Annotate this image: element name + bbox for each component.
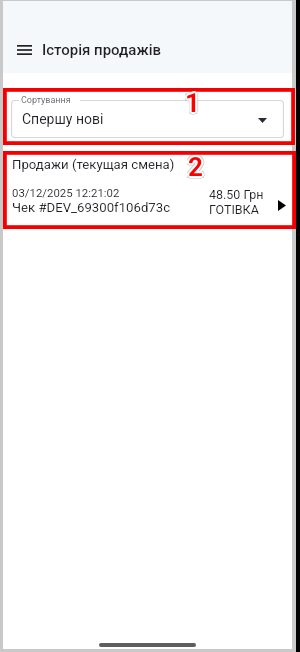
staticText: 2 xyxy=(190,152,205,182)
staticText: 2 xyxy=(186,153,201,183)
staticText: 1 xyxy=(184,90,199,120)
staticText: 1 xyxy=(184,87,199,117)
staticText: Спершу нові xyxy=(22,111,104,127)
staticText: 1 xyxy=(185,87,200,117)
staticText: 2 xyxy=(189,152,204,182)
staticText: ГОТІВКА xyxy=(209,202,259,217)
staticText: Сортування xyxy=(21,95,71,106)
staticText: 2 xyxy=(191,152,206,182)
staticText: 2 xyxy=(187,150,202,180)
staticText: 1 xyxy=(184,86,199,116)
staticText: 2 xyxy=(187,152,202,182)
staticText: 1 xyxy=(185,91,200,121)
staticText: 1 xyxy=(185,90,200,120)
staticText: 2 xyxy=(187,151,202,181)
staticText: 2 xyxy=(189,151,204,181)
staticText: 2 xyxy=(188,154,203,184)
staticText: 1 xyxy=(183,86,198,116)
staticText: 1 xyxy=(184,88,199,118)
staticText: Історія продажів xyxy=(42,41,161,59)
staticText: 1 xyxy=(183,88,198,118)
staticText: 2 xyxy=(190,150,205,180)
staticText: 2 xyxy=(188,152,203,182)
staticText: 2 xyxy=(186,150,201,180)
staticText: 2 xyxy=(188,154,203,184)
button[interactable]: Menu xyxy=(8,34,40,66)
staticText: 03/12/2025 12:21:02 xyxy=(12,186,120,199)
staticText: 1 xyxy=(186,90,201,120)
staticText: 1 xyxy=(186,86,201,116)
staticText: Продажи (текущая смена) xyxy=(12,157,175,172)
staticText: 2 xyxy=(186,154,201,184)
staticText: 2 xyxy=(190,151,205,181)
staticText: 48.50 Грн xyxy=(209,187,264,202)
staticText: 2 xyxy=(189,154,204,184)
staticText: 2 xyxy=(190,154,205,184)
staticText: 2 xyxy=(188,153,203,183)
staticText: 2 xyxy=(188,155,203,185)
staticText: 1 xyxy=(187,88,202,118)
staticText: Чек #DEV_69300f106d73c xyxy=(12,200,171,215)
staticText: 1 xyxy=(187,86,202,116)
staticText: 1 xyxy=(183,90,198,120)
staticText: 2 xyxy=(187,154,202,184)
staticText: 1 xyxy=(183,88,198,118)
staticText: 1 xyxy=(185,86,200,116)
staticText: 1 xyxy=(185,89,200,119)
staticText: 1 xyxy=(186,87,201,117)
staticText: 2 xyxy=(190,153,205,183)
staticText: 2 xyxy=(186,151,201,181)
staticText: 2 xyxy=(189,153,204,183)
staticText: 1 xyxy=(187,88,202,118)
staticText: 1 xyxy=(185,88,200,118)
staticText: 1 xyxy=(187,87,202,117)
staticText: 2 xyxy=(186,152,201,182)
staticText: 2 xyxy=(188,151,203,181)
staticText: 1 xyxy=(185,88,200,118)
staticText: 1 xyxy=(183,87,198,117)
staticText: 2 xyxy=(188,150,203,180)
staticText: 1 xyxy=(185,86,200,116)
staticText: 1 xyxy=(186,89,201,119)
staticText: 2 xyxy=(188,150,203,180)
staticText: 1 xyxy=(186,88,201,118)
staticText: 1 xyxy=(183,89,198,119)
staticText: 2 xyxy=(187,153,202,183)
staticText: 1 xyxy=(184,89,199,119)
staticText: 2 xyxy=(190,152,205,182)
staticText: 1 xyxy=(185,90,200,120)
staticText: 2 xyxy=(186,152,201,182)
staticText: 1 xyxy=(187,89,202,119)
staticText: 2 xyxy=(189,150,204,180)
staticText: 2 xyxy=(188,152,203,182)
button[interactable]: 03/12/2025 12:21:02 xyxy=(3,182,292,226)
staticText: 1 xyxy=(188,88,203,118)
button[interactable]: Сортування xyxy=(11,100,284,138)
staticText: 1 xyxy=(187,90,202,120)
